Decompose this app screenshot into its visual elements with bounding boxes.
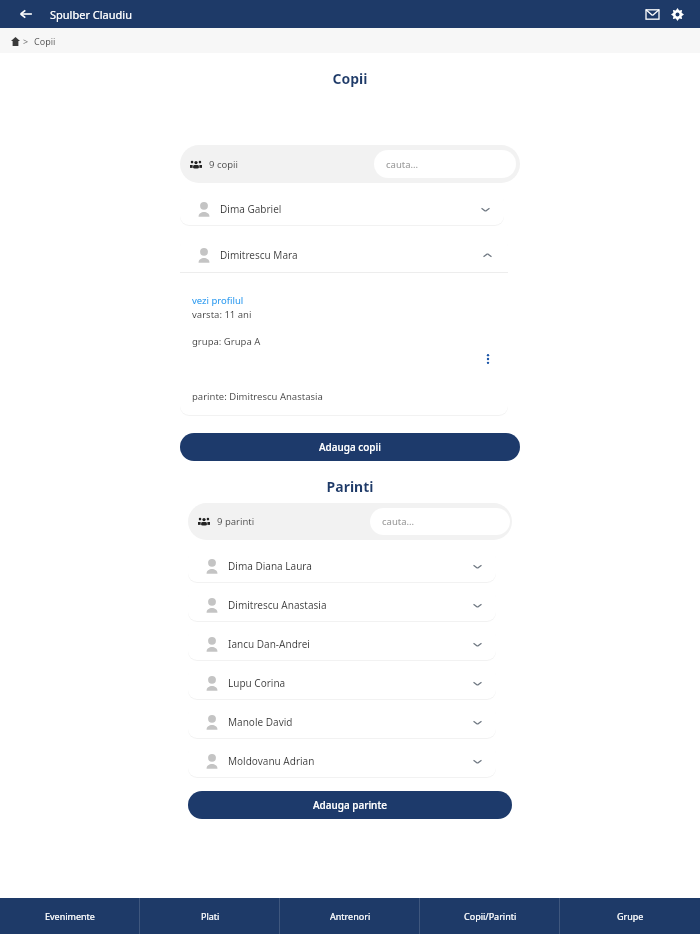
button[interactable]: Back [14,2,38,26]
button[interactable]: Antrenori [280,898,420,934]
staticText: Plati [201,910,220,922]
staticText: parinte: Dimitrescu Anastasia [192,390,323,403]
button[interactable]: Messages [641,3,663,25]
staticText: Antrenori [330,910,371,922]
staticText: Dimitrescu Anastasia [228,598,327,612]
button[interactable]: Home [7,33,23,49]
staticText: grupa: Grupa A [192,335,261,348]
staticText: 9 parinti [217,515,255,528]
button[interactable]: Moldovanu Adrian [188,744,496,777]
staticText: Moldovanu Adrian [228,754,315,768]
staticText: 9 copii [209,158,238,171]
staticText: Lupu Corina [228,676,286,690]
button[interactable]: Lupu Corina [188,666,496,699]
button[interactable]: Plati [140,898,280,934]
staticText: Manole David [228,715,293,729]
staticText: Adauga parinte [313,798,387,812]
button[interactable]: Dimitrescu Anastasia [188,588,496,621]
staticText: cauta... [386,158,419,171]
button[interactable]: Dimitrescu Mara [180,237,508,272]
staticText: Iancu Dan-Andrei [228,637,310,651]
button[interactable]: Copii [34,35,56,47]
staticText: Copii/Parinti [464,910,517,922]
button[interactable]: Settings [666,3,688,25]
button[interactable]: vezi profilul [192,294,244,307]
button[interactable]: Copii/Parinti [420,898,560,934]
staticText: Dimitrescu Mara [220,248,298,262]
staticText: Adauga copii [319,440,381,454]
staticText: varsta: 11 ani [192,308,252,321]
button[interactable]: Adauga parinte [188,791,512,819]
staticText: cauta... [382,515,415,528]
button[interactable]: Manole David [188,705,496,738]
button[interactable]: Evenimente [0,898,140,934]
button[interactable]: Dima Diana Laura [188,549,496,582]
staticText: > [23,35,29,47]
button[interactable]: cauta... [374,150,516,178]
staticText: Dima Gabriel [220,202,282,216]
staticText: Grupe [617,910,644,922]
button[interactable]: Grupe [560,898,700,934]
staticText: Copii [0,69,700,88]
button[interactable]: cauta... [370,508,510,535]
button[interactable]: Adauga copii [180,433,520,461]
staticText: Evenimente [45,910,95,922]
button[interactable]: Iancu Dan-Andrei [188,627,496,660]
staticText: Dima Diana Laura [228,559,312,573]
button[interactable]: Dima Gabriel [180,192,504,225]
button[interactable]: More options [478,349,498,369]
staticText: Spulber Claudiu [50,7,132,22]
staticText: Parinti [0,477,700,496]
